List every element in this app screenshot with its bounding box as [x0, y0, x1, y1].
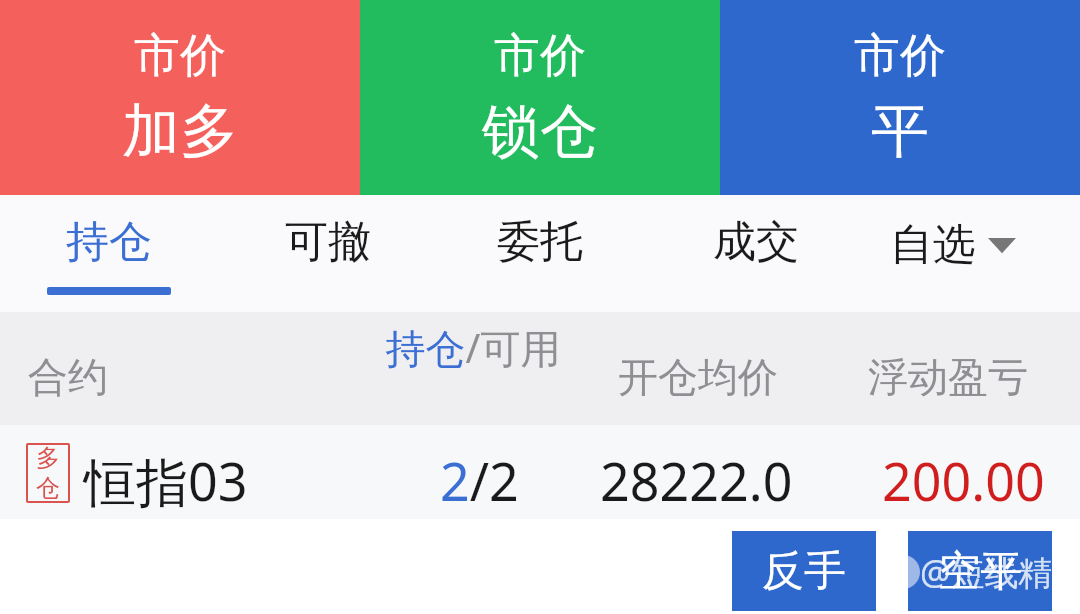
staticText: 多 — [36, 443, 60, 473]
staticText: 28222.0 — [600, 445, 793, 516]
button[interactable]: 持仓 — [42, 195, 176, 312]
staticText: 反手 — [762, 545, 846, 598]
staticText: @短线精灵518 — [920, 549, 1080, 595]
staticText: 市价 — [134, 27, 226, 85]
button[interactable]: 成交 — [686, 195, 826, 312]
staticText: 开仓均价 — [618, 352, 778, 402]
staticText: 持仓 — [66, 215, 152, 269]
staticText: 仓 — [36, 473, 60, 503]
button[interactable]: 多 — [0, 425, 1080, 519]
staticText: 成交 — [713, 215, 799, 269]
staticText: 市价 — [494, 27, 586, 85]
button[interactable]: 市价 — [360, 0, 720, 195]
staticText: 合约 — [28, 352, 108, 402]
staticText: 加多 — [122, 95, 238, 168]
staticText: 可撤 — [285, 215, 371, 269]
staticText: 2/2 — [440, 445, 519, 516]
button[interactable]: 委托 — [470, 195, 610, 312]
staticText: 委托 — [497, 215, 583, 269]
button[interactable]: 可撤 — [258, 195, 398, 312]
button[interactable]: 空平 — [908, 531, 1052, 611]
staticText: 自选 — [890, 218, 976, 272]
button[interactable]: 市价 — [720, 0, 1080, 195]
staticText: 200.00 — [882, 445, 1045, 516]
staticText: 恒指03 — [84, 445, 248, 516]
staticText: 市价 — [854, 27, 946, 85]
staticText: 浮动盈亏 — [868, 352, 1028, 402]
button[interactable]: 市价 — [0, 0, 360, 195]
staticText: 空平 — [938, 545, 1022, 598]
staticText: 锁仓 — [482, 95, 598, 168]
staticText: 持仓/可用 — [382, 320, 564, 375]
button[interactable]: 自选 — [890, 215, 1016, 275]
button[interactable]: 反手 — [732, 531, 876, 611]
staticText: 平 — [871, 95, 929, 168]
